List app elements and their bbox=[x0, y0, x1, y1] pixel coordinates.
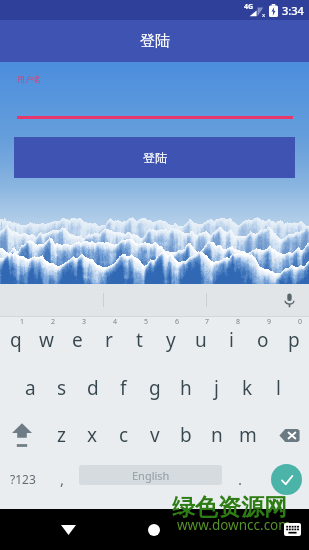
button[interactable]: 1 bbox=[0, 317, 31, 351]
button[interactable]: ?123 bbox=[0, 462, 46, 496]
button[interactable]: 8 bbox=[216, 317, 247, 351]
staticText: 0 bbox=[298, 317, 303, 327]
staticText: h bbox=[180, 375, 192, 401]
staticText: 5 bbox=[144, 317, 149, 327]
staticText: q bbox=[10, 327, 22, 353]
button[interactable]: English bbox=[79, 465, 222, 485]
staticText: 6 bbox=[175, 317, 180, 327]
button[interactable]: . bbox=[226, 462, 254, 496]
staticText: d bbox=[87, 375, 99, 401]
staticText: j bbox=[214, 375, 219, 401]
button[interactable]: Shift bbox=[6, 419, 37, 451]
button[interactable]: , bbox=[46, 462, 78, 496]
button[interactable]: 6 bbox=[155, 317, 186, 351]
button[interactable]: s bbox=[46, 372, 77, 404]
button[interactable]: f bbox=[108, 372, 139, 404]
button[interactable]: n bbox=[201, 419, 232, 451]
button[interactable]: Back bbox=[53, 509, 83, 550]
button[interactable]: d bbox=[77, 372, 108, 404]
staticText: www.downcc.com bbox=[177, 516, 291, 534]
button[interactable]: k bbox=[232, 372, 263, 404]
staticText: b bbox=[180, 422, 192, 448]
staticText: p bbox=[288, 327, 300, 353]
staticText: w bbox=[39, 327, 54, 353]
staticText: 绿色资源网 bbox=[172, 493, 287, 522]
staticText: 登陆 bbox=[143, 150, 167, 165]
staticText: 7 bbox=[205, 317, 210, 327]
staticText: v bbox=[150, 422, 160, 448]
button[interactable]: 3 bbox=[62, 317, 93, 351]
staticText: t bbox=[136, 327, 143, 353]
button[interactable]: v bbox=[139, 419, 170, 451]
staticText: 9 bbox=[267, 317, 272, 327]
button[interactable]: Backspace bbox=[274, 419, 305, 451]
staticText: i bbox=[229, 327, 234, 353]
button[interactable]: Voice input bbox=[277, 288, 301, 312]
staticText: x bbox=[262, 11, 266, 19]
staticText: ?123 bbox=[10, 471, 36, 487]
button[interactable]: 9 bbox=[247, 317, 278, 351]
button[interactable]: Enter bbox=[271, 464, 302, 495]
staticText: 4G bbox=[244, 2, 254, 12]
staticText: 3 bbox=[82, 317, 87, 327]
staticText: 1 bbox=[20, 317, 25, 327]
button[interactable]: 5 bbox=[124, 317, 155, 351]
staticText: a bbox=[25, 375, 36, 401]
staticText: s bbox=[57, 375, 67, 401]
button[interactable]: z bbox=[46, 419, 77, 451]
staticText: z bbox=[57, 422, 66, 448]
staticText: x bbox=[87, 422, 98, 448]
staticText: f bbox=[120, 375, 127, 401]
staticText: g bbox=[149, 375, 161, 401]
staticText: 3:34 bbox=[282, 3, 304, 18]
staticText: English bbox=[132, 468, 170, 483]
staticText: 2 bbox=[51, 317, 56, 327]
button[interactable]: 2 bbox=[31, 317, 62, 351]
staticText: o bbox=[257, 327, 269, 353]
button[interactable]: g bbox=[139, 372, 170, 404]
button[interactable]: 0 bbox=[278, 317, 309, 351]
button[interactable]: x bbox=[77, 419, 108, 451]
button[interactable]: j bbox=[201, 372, 232, 404]
staticText: 8 bbox=[236, 317, 241, 327]
button[interactable]: h bbox=[170, 372, 201, 404]
staticText: r bbox=[105, 327, 113, 353]
staticText: m bbox=[239, 422, 257, 448]
staticText: n bbox=[211, 422, 223, 448]
staticText: , bbox=[60, 469, 65, 489]
staticText: c bbox=[119, 422, 129, 448]
staticText: . bbox=[238, 469, 243, 489]
button[interactable]: 登陆 bbox=[14, 137, 295, 178]
button[interactable]: a bbox=[15, 372, 46, 404]
staticText: l bbox=[276, 375, 281, 401]
staticText: 登陆 bbox=[140, 32, 170, 51]
button[interactable]: l bbox=[263, 372, 294, 404]
button[interactable]: Home bbox=[139, 509, 169, 550]
staticText: e bbox=[72, 327, 83, 353]
staticText: 用户名 bbox=[17, 74, 41, 84]
button[interactable]: c bbox=[108, 419, 139, 451]
button[interactable]: Switch keyboard bbox=[277, 509, 307, 550]
staticText: u bbox=[195, 327, 207, 353]
staticText: k bbox=[242, 375, 253, 401]
staticText: y bbox=[166, 327, 176, 353]
button[interactable]: m bbox=[232, 419, 263, 451]
button[interactable]: 7 bbox=[185, 317, 216, 351]
staticText: 4 bbox=[113, 317, 118, 327]
button[interactable]: b bbox=[170, 419, 201, 451]
button[interactable]: 4 bbox=[93, 317, 124, 351]
